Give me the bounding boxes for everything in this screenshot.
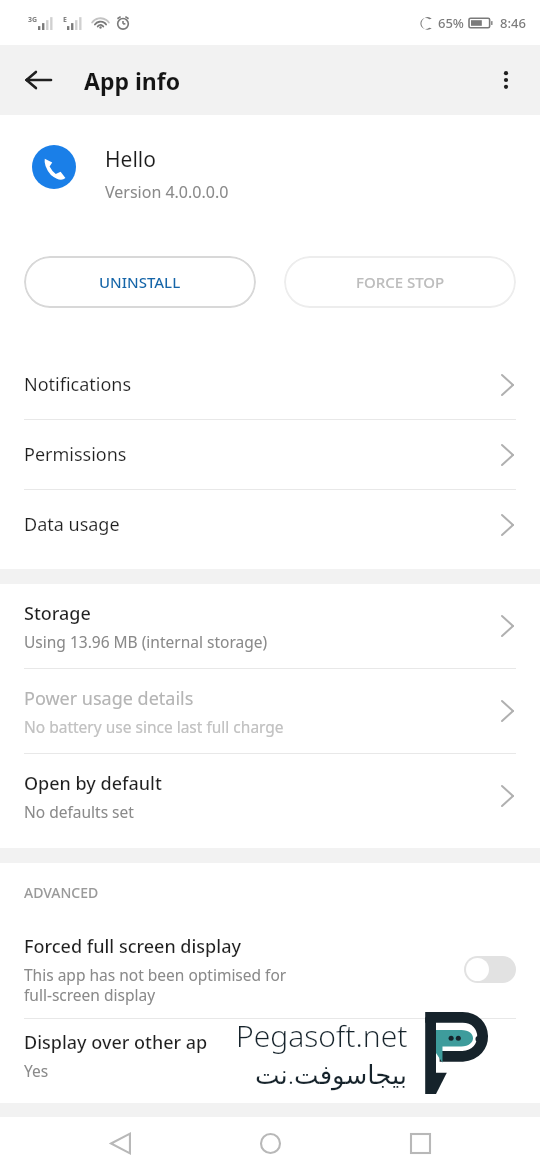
- staticText: 3G: [28, 15, 38, 25]
- staticText: Display over other ap: [24, 1030, 208, 1055]
- staticText: Pegasoft.net: [236, 1015, 408, 1056]
- staticText: Using 13.96 MB (internal storage): [24, 631, 268, 652]
- staticText: UNINSTALL: [99, 272, 181, 292]
- staticText: 8:46: [500, 14, 526, 32]
- staticText: App info: [84, 65, 181, 96]
- button[interactable]: Back: [12, 54, 64, 106]
- staticText: Notifications: [24, 372, 132, 397]
- staticText: Power usage details: [24, 686, 194, 711]
- button[interactable]: Back: [90, 1117, 150, 1170]
- button[interactable]: More options: [480, 54, 532, 106]
- staticText: بيجاسوفت.نت: [255, 1056, 408, 1091]
- button[interactable]: FORCE STOP: [284, 256, 516, 308]
- staticText: Version 4.0.0.0.0: [105, 181, 229, 203]
- staticText: Permissions: [24, 442, 127, 467]
- button[interactable]: Permissions: [0, 420, 540, 489]
- button[interactable]: Notifications: [0, 350, 540, 419]
- button[interactable]: UNINSTALL: [24, 256, 256, 308]
- button[interactable]: Recent apps: [390, 1117, 450, 1170]
- staticText: 65%: [438, 14, 464, 32]
- button[interactable]: Display over other ap: [0, 1019, 540, 1091]
- button[interactable]: Forced full screen display: [0, 921, 540, 1018]
- staticText: Forced full screen display: [24, 934, 241, 959]
- button[interactable]: Forced full screen display toggle: [464, 956, 516, 983]
- staticText: FORCE STOP: [356, 272, 445, 292]
- staticText: Storage: [24, 601, 91, 626]
- button[interactable]: Storage: [0, 584, 540, 668]
- button[interactable]: Power usage details: [0, 669, 540, 753]
- staticText: Data usage: [24, 512, 120, 537]
- button[interactable]: Open by default: [0, 754, 540, 838]
- staticText: Hello: [105, 145, 156, 174]
- staticText: Open by default: [24, 771, 162, 796]
- staticText: This app has not been optimised for full…: [24, 964, 287, 1006]
- staticText: No defaults set: [24, 801, 134, 822]
- staticText: Yes: [24, 1060, 49, 1081]
- staticText: No battery use since last full charge: [24, 716, 284, 737]
- button[interactable]: Home: [240, 1117, 300, 1170]
- button[interactable]: Data usage: [0, 490, 540, 559]
- staticText: E: [63, 15, 67, 25]
- staticText: ADVANCED: [24, 883, 99, 902]
